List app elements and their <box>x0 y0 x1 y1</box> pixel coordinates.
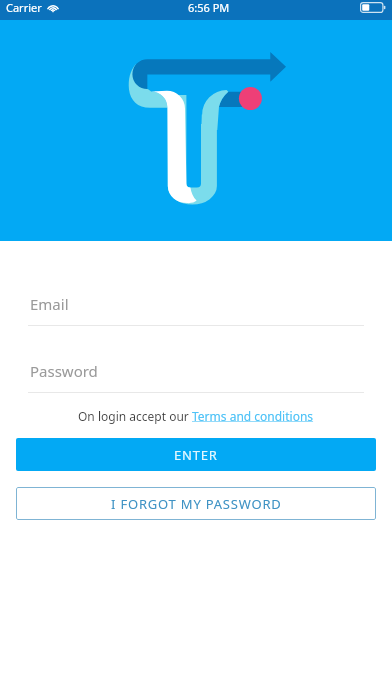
button[interactable]: ENTER <box>16 438 376 471</box>
staticText: Terms and conditions <box>192 408 314 424</box>
staticText: 6:56 PM <box>188 0 230 15</box>
staticText: Email <box>30 294 69 314</box>
staticText: I FORGOT MY PASSWORD <box>111 495 282 513</box>
staticText: Carrier <box>6 0 42 15</box>
staticText: On login accept our <box>78 408 192 424</box>
staticText: Password <box>30 361 98 381</box>
button[interactable]: Terms and conditions <box>192 408 314 424</box>
button[interactable]: I FORGOT MY PASSWORD <box>16 487 376 520</box>
staticText: ENTER <box>174 446 218 464</box>
